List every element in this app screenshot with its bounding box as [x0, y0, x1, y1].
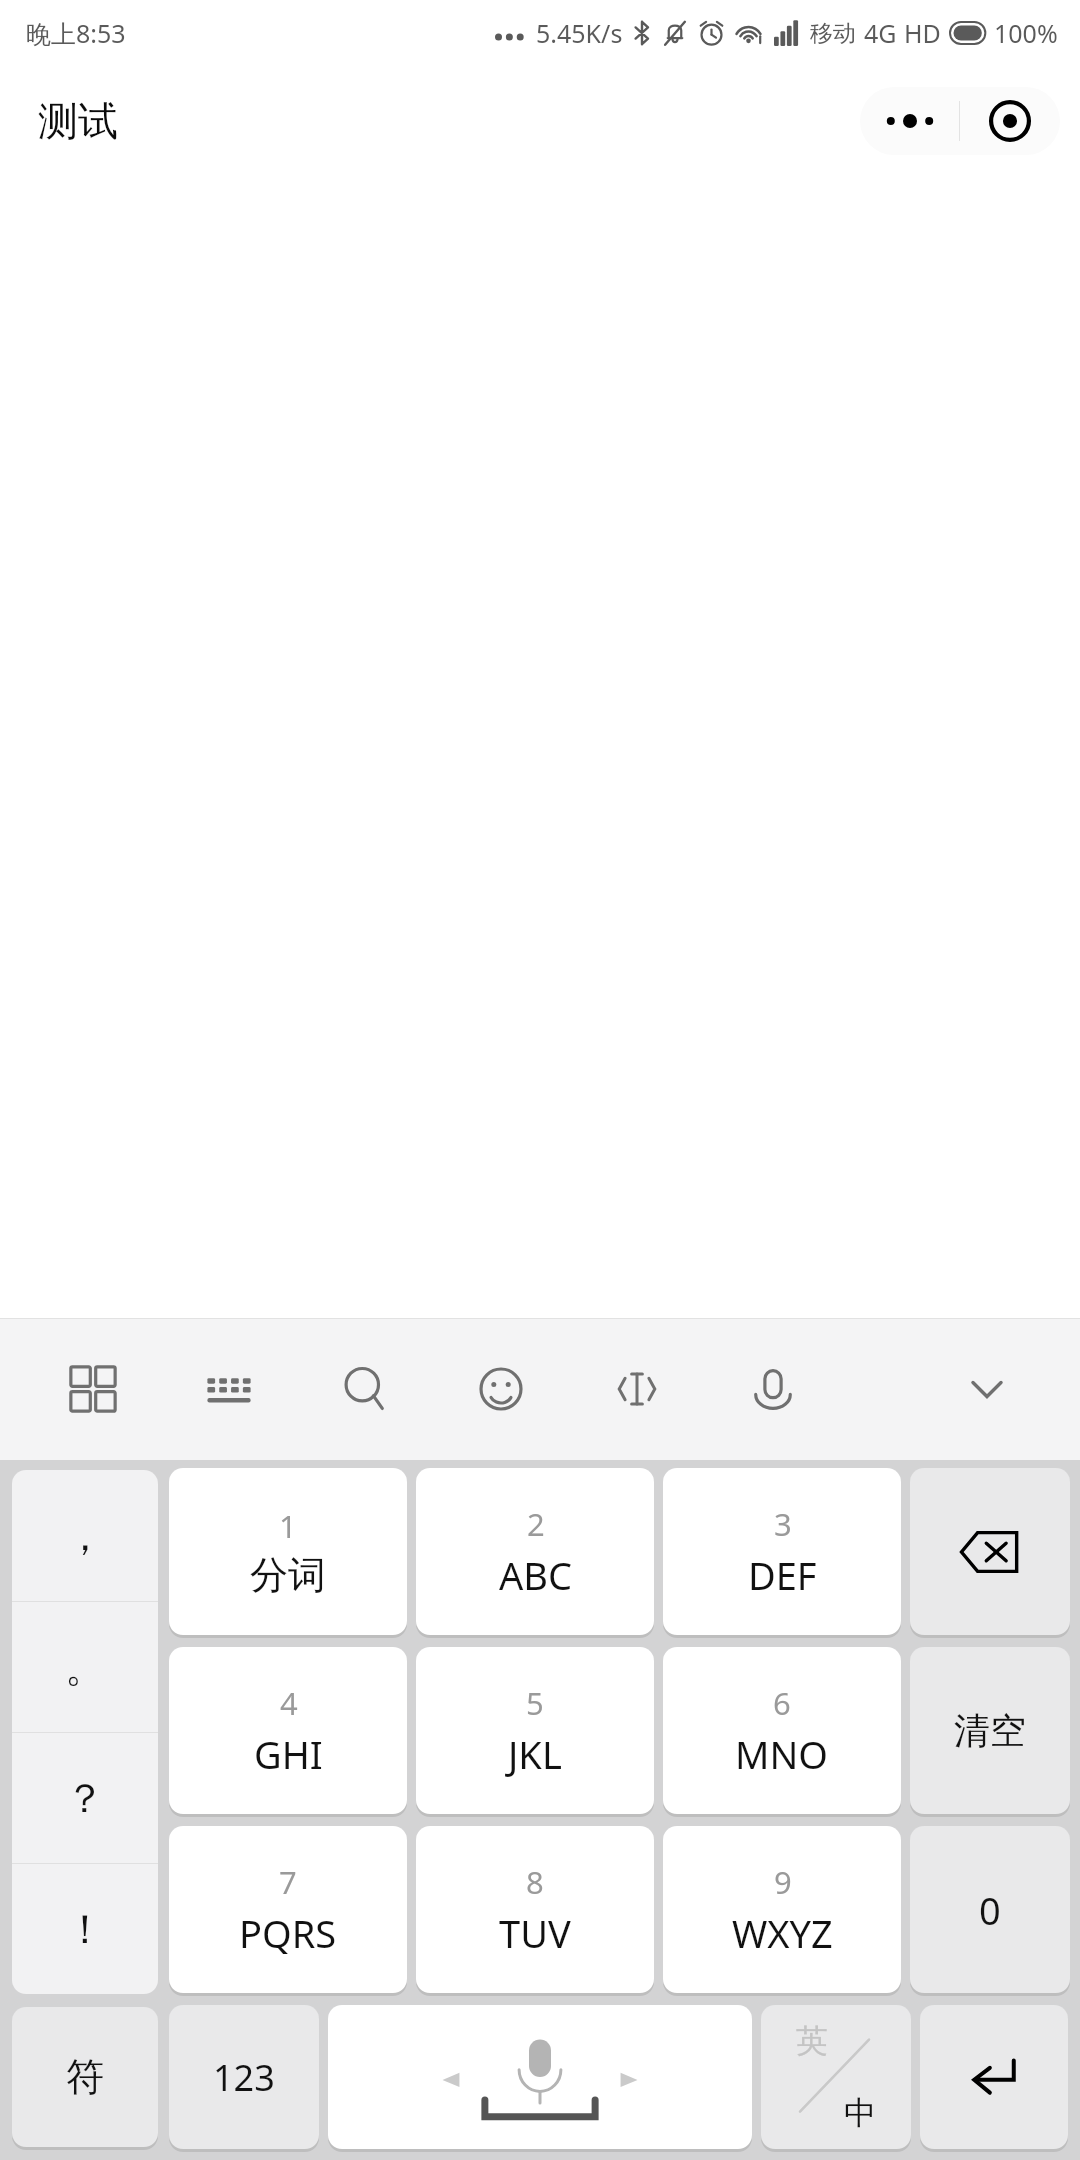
button[interactable]: Space [328, 2005, 752, 2149]
button[interactable]: Enter [920, 2005, 1068, 2149]
button[interactable]: Panels [56, 1352, 130, 1426]
button[interactable]: Cursor control [600, 1352, 674, 1426]
staticText: 符 [66, 2053, 104, 2101]
staticText: 移动 [810, 19, 856, 48]
staticText: 4G [864, 16, 897, 50]
button[interactable]: 4 [169, 1647, 407, 1814]
button[interactable]: Hide keyboard [950, 1352, 1024, 1426]
staticText: 9 [774, 1861, 792, 1903]
staticText: ！ [65, 1904, 105, 1954]
button[interactable]: 清空 [910, 1647, 1070, 1814]
button[interactable]: 9 [663, 1826, 901, 1993]
button[interactable]: 5 [416, 1647, 654, 1814]
staticText: DEF [748, 1549, 817, 1601]
button[interactable]: Backspace [910, 1468, 1070, 1635]
staticText: 。 [65, 1642, 105, 1692]
staticText: 英 [796, 2021, 828, 2061]
button[interactable]: More [860, 87, 959, 155]
button[interactable]: 123 [169, 2005, 319, 2149]
staticText: 5 [526, 1682, 544, 1724]
button[interactable]: 符 [12, 2007, 158, 2147]
button[interactable]: ？ [12, 1733, 158, 1863]
staticText: 8 [526, 1861, 544, 1903]
button[interactable]: 7 [169, 1826, 407, 1993]
staticText: JKL [508, 1728, 562, 1780]
staticText: MNO [735, 1728, 829, 1780]
staticText: PQRS [239, 1907, 337, 1959]
staticText: TUV [499, 1907, 571, 1959]
staticText: 6 [773, 1682, 791, 1724]
button[interactable]: Emoji [464, 1352, 538, 1426]
button[interactable]: Voice input [736, 1352, 810, 1426]
staticText: HD [904, 16, 941, 50]
staticText: 7 [279, 1861, 297, 1903]
button[interactable]: 8 [416, 1826, 654, 1993]
staticText: GHI [254, 1728, 323, 1780]
button[interactable]: 3 [663, 1468, 901, 1635]
button[interactable]: ！ [12, 1864, 158, 1994]
button[interactable]: 6 [663, 1647, 901, 1814]
staticText: ？ [65, 1773, 105, 1823]
button[interactable]: Language [761, 2005, 911, 2149]
staticText: 5.45K/s [536, 16, 623, 50]
staticText: 4 [280, 1682, 298, 1724]
button[interactable]: Keyboard layout [192, 1352, 266, 1426]
staticText: 100% [994, 16, 1058, 50]
button[interactable]: 。 [12, 1602, 158, 1732]
staticText: 123 [213, 2053, 275, 2102]
staticText: 分词 [250, 1551, 326, 1599]
button[interactable]: ， [12, 1470, 158, 1601]
staticText: 1 [279, 1505, 297, 1547]
staticText: 0 [979, 1884, 1001, 1936]
button[interactable]: Search [328, 1352, 402, 1426]
staticText: 3 [774, 1503, 792, 1545]
staticText: WXYZ [732, 1907, 833, 1959]
staticText: 晚上8:53 [26, 16, 126, 50]
staticText: ABC [499, 1549, 572, 1601]
button[interactable]: 2 [416, 1468, 654, 1635]
staticText: ， [65, 1511, 105, 1561]
staticText: 中 [844, 2093, 876, 2133]
staticText: 清空 [954, 1708, 1026, 1753]
button[interactable]: Close [960, 87, 1060, 155]
button[interactable]: 1 [169, 1468, 407, 1635]
staticText: 2 [527, 1503, 545, 1545]
button[interactable]: 0 [910, 1826, 1070, 1993]
staticText: 测试 [38, 96, 118, 146]
